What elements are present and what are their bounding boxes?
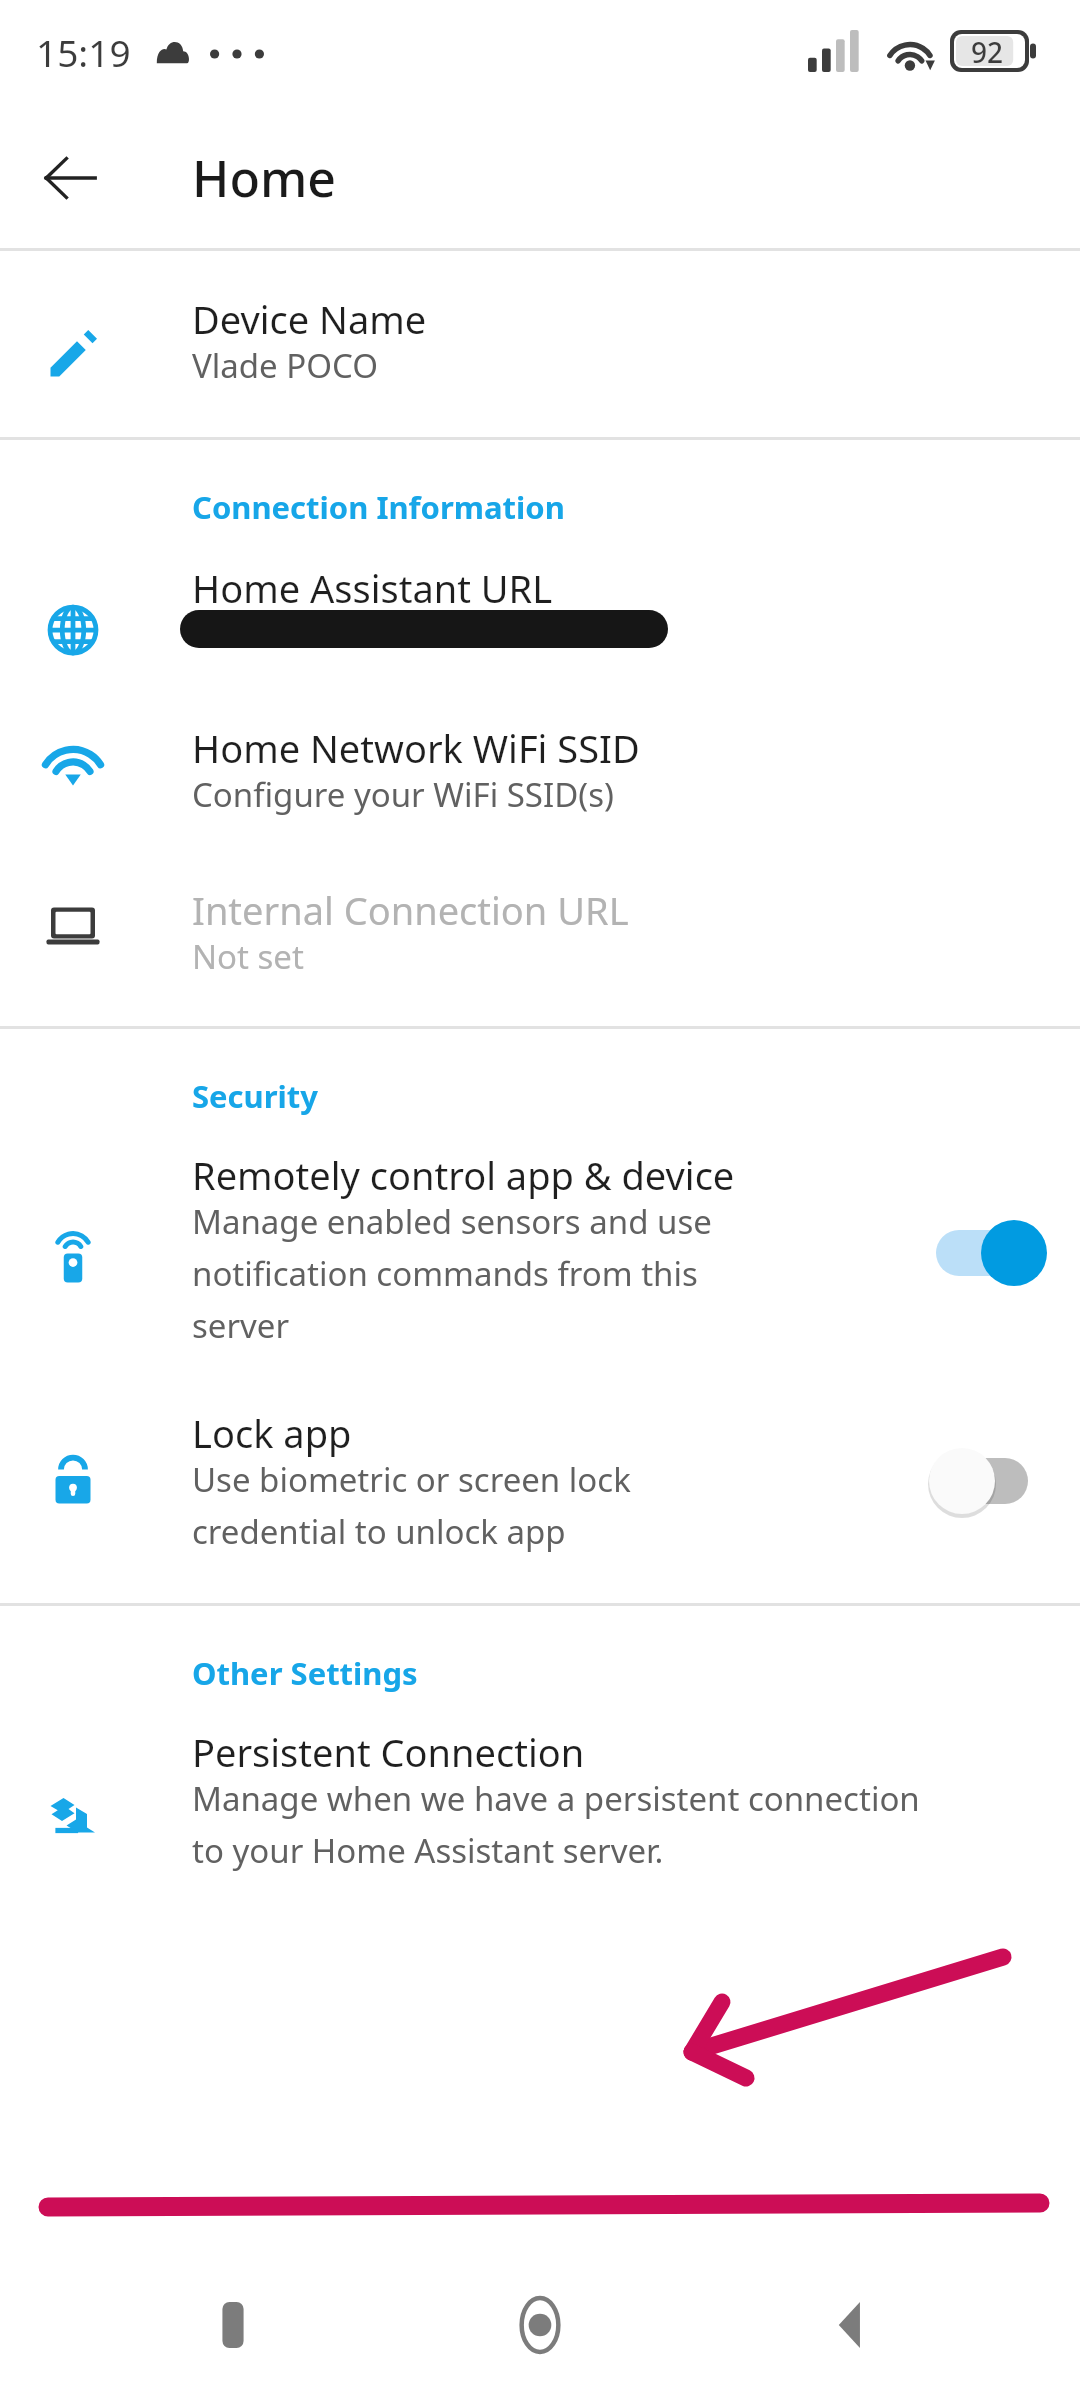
button[interactable]: Remotely control app & device xyxy=(0,1131,1080,1389)
staticText: Use biometric or screen lock xyxy=(192,1457,631,1502)
staticText: to your Home Assistant server. xyxy=(192,1828,664,1873)
staticText: credential to unlock app xyxy=(192,1509,566,1554)
staticText: server xyxy=(192,1303,290,1348)
staticText: Other Settings xyxy=(192,1652,418,1694)
button[interactable]: Off xyxy=(920,1447,1040,1515)
staticText: Persistent Connection xyxy=(192,1726,585,1778)
staticText: Vlade POCO xyxy=(192,343,379,388)
staticText: Security xyxy=(192,1075,319,1117)
button[interactable]: Back xyxy=(773,2250,923,2400)
other: Home Assistant URL xyxy=(43,600,103,660)
staticText: Home Assistant URL xyxy=(192,562,553,614)
staticText: Home xyxy=(192,144,336,212)
staticText: Remotely control app & device xyxy=(192,1149,735,1201)
staticText: Internal Connection URL xyxy=(192,884,629,936)
staticText: notification commands from this xyxy=(192,1251,698,1296)
staticText: Lock app xyxy=(192,1407,352,1459)
button[interactable]: Home Assistant URL xyxy=(0,542,1080,704)
staticText: Device Name xyxy=(192,293,427,345)
button[interactable]: On xyxy=(920,1219,1040,1287)
staticText: Home Network WiFi SSID xyxy=(192,722,640,774)
button[interactable]: Recent apps xyxy=(158,2250,308,2400)
button[interactable]: Persistent Connection xyxy=(0,1708,1080,1878)
staticText: Not set xyxy=(192,934,304,979)
staticText: Manage enabled sensors and use xyxy=(192,1199,712,1244)
button[interactable]: Home xyxy=(465,2250,615,2400)
button[interactable]: Device Name xyxy=(0,251,1080,437)
staticText: 92 xyxy=(971,33,1004,71)
staticText: 15:19 xyxy=(36,27,131,77)
button[interactable]: Internal Connection URL xyxy=(0,866,1080,1026)
button[interactable]: Back xyxy=(34,142,106,214)
button[interactable]: Home Network WiFi SSID xyxy=(0,704,1080,866)
button[interactable]: Lock app xyxy=(0,1389,1080,1603)
staticText: Connection Information xyxy=(192,486,565,528)
staticText: Configure your WiFi SSID(s) xyxy=(192,772,614,817)
staticText: Manage when we have a persistent connect… xyxy=(192,1776,920,1821)
